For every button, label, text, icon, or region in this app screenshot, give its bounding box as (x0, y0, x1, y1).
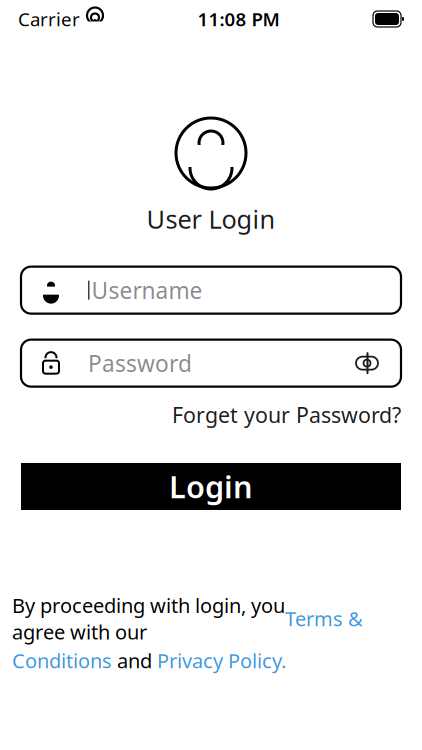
staticText: User Login (146, 202, 275, 236)
staticText: Username (91, 275, 202, 305)
button[interactable]: Login (21, 463, 401, 510)
button[interactable]: Privacy Policy. (157, 647, 286, 674)
staticText: Terms & (285, 605, 363, 632)
staticText: By proceeding with login, you agree with… (12, 592, 285, 645)
button[interactable]: Terms & (285, 605, 363, 632)
staticText: Forget your Password? (172, 401, 401, 429)
staticText: Privacy Policy. (157, 647, 286, 674)
button[interactable]: Conditions (12, 647, 112, 674)
button[interactable]: Forget your Password? (172, 401, 401, 429)
staticText: Login (169, 466, 253, 507)
staticText: Conditions (12, 647, 112, 674)
button[interactable]: Password (21, 340, 401, 387)
staticText: and (112, 647, 157, 674)
staticText: Password (88, 348, 192, 378)
button[interactable]: Username (21, 267, 401, 314)
staticText: 11:08 PM (197, 7, 279, 31)
staticText: Carrier (18, 7, 80, 31)
